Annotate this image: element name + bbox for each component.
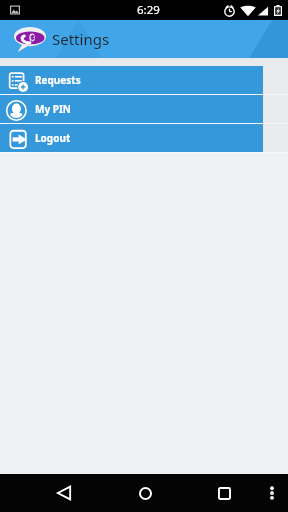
button[interactable]: Requests — [0, 66, 288, 94]
button[interactable]: More options — [258, 474, 286, 512]
staticText: My PIN — [35, 102, 71, 116]
button[interactable]: My PIN — [0, 95, 288, 123]
button[interactable]: Recents — [204, 474, 244, 512]
button[interactable]: Back — [44, 474, 84, 512]
staticText: Settings — [52, 29, 110, 49]
staticText: Logout — [35, 131, 71, 145]
staticText: 6:29 — [137, 2, 160, 18]
button[interactable]: Home — [124, 474, 164, 512]
staticText: Requests — [35, 73, 81, 87]
button[interactable]: Logout — [0, 124, 288, 152]
